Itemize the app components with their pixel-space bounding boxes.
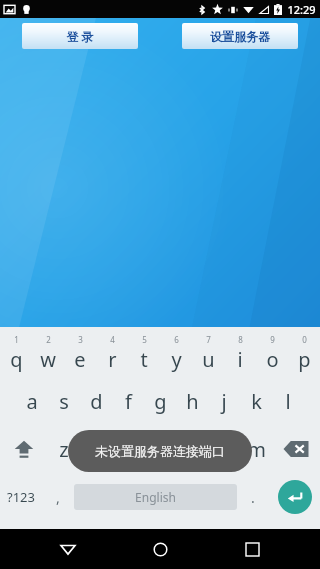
button[interactable]: 7 — [192, 329, 224, 377]
button[interactable]: v — [144, 425, 176, 473]
button[interactable]: z — [48, 425, 80, 473]
button[interactable]: Back — [44, 529, 92, 569]
button[interactable]: 3 — [64, 329, 96, 377]
staticText: f — [125, 388, 132, 415]
staticText: 0 — [302, 334, 307, 345]
button[interactable]: 登 录 — [22, 23, 138, 49]
button[interactable]: 1 — [0, 329, 32, 377]
button[interactable]: Shift — [0, 425, 48, 473]
staticText: g — [154, 388, 167, 415]
staticText: English — [135, 489, 176, 505]
staticText: 未设置服务器连接端口 — [95, 443, 225, 459]
button[interactable]: g — [144, 377, 176, 425]
button[interactable]: 4 — [96, 329, 128, 377]
button[interactable]: l — [272, 377, 304, 425]
staticText: z — [59, 436, 69, 463]
staticText: c — [123, 436, 133, 463]
staticText: w — [40, 346, 56, 373]
staticText: p — [298, 346, 311, 373]
button[interactable]: Backspace — [272, 425, 320, 473]
button[interactable]: h — [176, 377, 208, 425]
button[interactable]: Period — [237, 473, 269, 521]
button[interactable]: 6 — [160, 329, 192, 377]
staticText: 4 — [110, 334, 115, 345]
staticText: n — [218, 436, 231, 463]
staticText: h — [186, 388, 199, 415]
button[interactable]: c — [112, 425, 144, 473]
staticText: 设置服务器 — [210, 29, 270, 44]
button[interactable]: Comma — [42, 473, 74, 521]
button[interactable]: Home — [136, 529, 184, 569]
button[interactable]: 9 — [256, 329, 288, 377]
button[interactable]: 2 — [32, 329, 64, 377]
staticText: r — [108, 346, 117, 373]
staticText: x — [91, 436, 102, 463]
staticText: q — [10, 346, 23, 373]
staticText: l — [285, 388, 291, 415]
staticText: 8 — [238, 334, 243, 345]
staticText: 6 — [174, 334, 179, 345]
button[interactable]: ?123 — [0, 473, 42, 521]
button[interactable]: 8 — [224, 329, 256, 377]
button[interactable]: j — [208, 377, 240, 425]
staticText: e — [74, 346, 86, 373]
staticText: 登 录 — [66, 28, 94, 44]
button[interactable]: 0 — [288, 329, 320, 377]
button[interactable]: m — [240, 425, 272, 473]
button[interactable]: English — [74, 484, 237, 510]
staticText: 7 — [206, 334, 211, 345]
staticText: k — [251, 388, 262, 415]
staticText: 2 — [46, 334, 51, 345]
staticText: u — [202, 346, 215, 373]
button[interactable]: a — [16, 377, 48, 425]
button[interactable]: Recents — [228, 529, 276, 569]
staticText: ?123 — [7, 488, 35, 506]
staticText: b — [186, 436, 199, 463]
button[interactable]: 设置服务器 — [182, 23, 298, 49]
staticText: 1 — [14, 334, 19, 345]
staticText: d — [90, 388, 103, 415]
staticText: 9 — [270, 334, 275, 345]
staticText: 5 — [142, 334, 147, 345]
staticText: i — [237, 346, 243, 373]
staticText: a — [26, 388, 38, 415]
button[interactable]: b — [176, 425, 208, 473]
button[interactable]: s — [48, 377, 80, 425]
staticText: . — [251, 488, 255, 507]
staticText: o — [266, 346, 279, 373]
staticText: m — [247, 436, 266, 463]
button[interactable]: Enter — [269, 473, 320, 521]
button[interactable]: f — [112, 377, 144, 425]
staticText: t — [140, 346, 148, 373]
button[interactable]: n — [208, 425, 240, 473]
button[interactable]: 5 — [128, 329, 160, 377]
button[interactable]: k — [240, 377, 272, 425]
staticText: 12:29 — [287, 2, 316, 17]
staticText: , — [56, 488, 60, 507]
button[interactable]: x — [80, 425, 112, 473]
staticText: j — [221, 388, 227, 415]
staticText: y — [171, 346, 182, 373]
staticText: s — [59, 388, 69, 415]
button[interactable]: d — [80, 377, 112, 425]
staticText: 3 — [78, 334, 83, 345]
staticText: v — [155, 436, 166, 463]
